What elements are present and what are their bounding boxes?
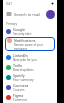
button[interactable]: Trello [3,62,57,72]
staticText: Trello [13,63,23,68]
staticText: Search in mail [14,12,41,17]
staticText: Remain aware of your messages [14,43,53,50]
staticText: Security alert [13,32,32,36]
button[interactable]: Account [46,10,55,19]
staticText: Your summary [13,78,34,82]
button[interactable]: Spotify [3,72,57,82]
staticText: LinkedIn [13,53,28,58]
other: Menu [5,10,13,18]
staticText: Primary [6,22,18,26]
staticText: Board updates [13,68,34,72]
staticText: Spotify [13,73,25,78]
button[interactable]: Coursera [3,82,57,92]
staticText: Comment [13,98,27,102]
button[interactable]: Google [3,26,57,36]
staticText: 9:41 [6,2,12,6]
staticText: Coursera [13,83,29,88]
staticText: Google [13,27,25,32]
button[interactable]: Menu [5,7,55,21]
button[interactable]: Notifications [5,37,55,51]
button[interactable]: Figma [3,92,57,102]
staticText: New jobs for you [13,58,37,62]
button[interactable]: LinkedIn [3,52,57,62]
staticText: Figma [13,93,24,98]
staticText: Notifications [14,38,36,43]
staticText: Courses [13,88,25,92]
